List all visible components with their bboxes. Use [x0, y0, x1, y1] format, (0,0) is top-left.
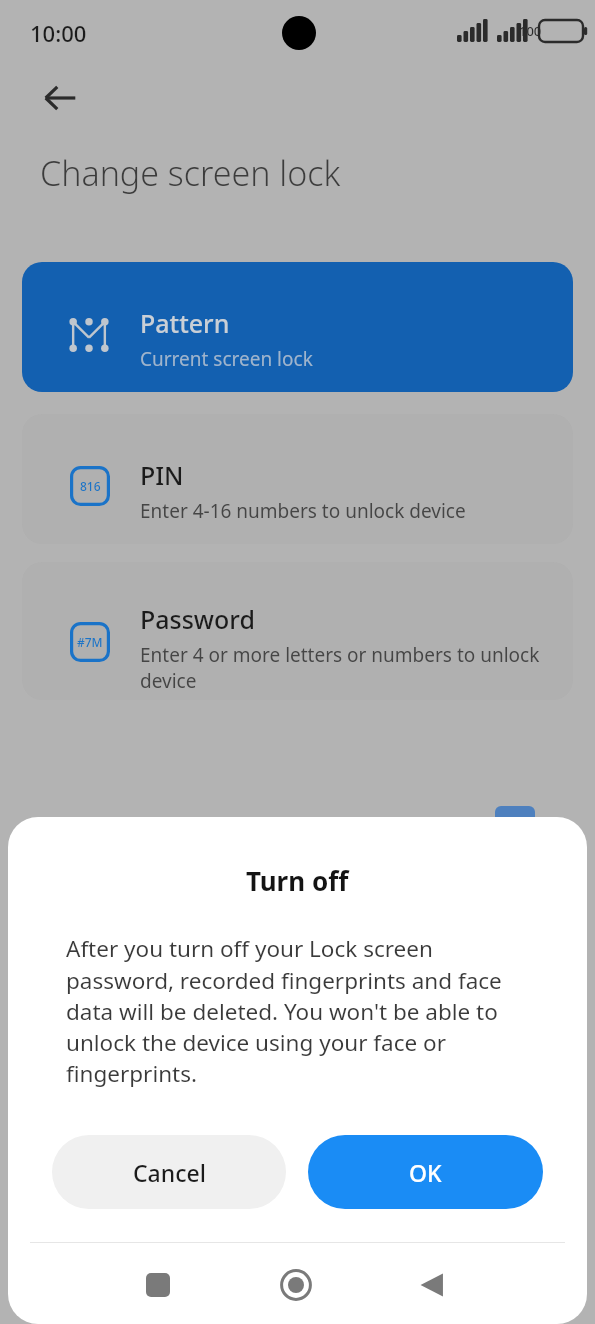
- button[interactable]: Cancel: [52, 1135, 286, 1209]
- staticText: Turn off: [246, 863, 349, 898]
- button[interactable]: Recent apps: [132, 1259, 184, 1311]
- staticText: 816: [80, 478, 101, 494]
- staticText: OK: [409, 1157, 442, 1188]
- button[interactable]: OK: [308, 1135, 543, 1209]
- button[interactable]: Home: [270, 1259, 322, 1311]
- staticText: Enter 4-16 numbers to unlock device: [140, 498, 466, 524]
- staticText: Change screen lock: [40, 150, 341, 196]
- button[interactable]: Back: [406, 1259, 458, 1311]
- staticText: 10:00: [30, 18, 87, 48]
- staticText: Enter 4 or more letters or numbers to un…: [140, 642, 560, 693]
- staticText: After you turn off your Lock screen pass…: [66, 933, 535, 1088]
- staticText: #7M: [77, 634, 103, 650]
- staticText: Current screen lock: [140, 346, 313, 372]
- staticText: Pattern: [140, 306, 230, 340]
- button[interactable]: 816: [22, 414, 573, 544]
- staticText: Password: [140, 602, 255, 636]
- staticText: 100: [519, 22, 542, 40]
- button[interactable]: Pattern: [22, 262, 573, 392]
- button[interactable]: Back: [32, 70, 88, 126]
- staticText: Cancel: [133, 1157, 206, 1188]
- staticText: PIN: [140, 458, 184, 492]
- button[interactable]: #7M: [22, 562, 573, 700]
